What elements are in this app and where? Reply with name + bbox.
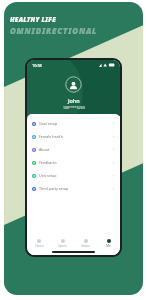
button[interactable]: Status	[74, 236, 97, 249]
staticText: Goal setup	[39, 121, 58, 126]
button[interactable]: Feedbacks	[27, 156, 120, 169]
staticText: Me	[106, 244, 111, 248]
button[interactable]: Third-party setup	[27, 182, 120, 195]
button[interactable]: Goal setup	[27, 117, 120, 130]
staticText: About	[39, 147, 50, 152]
staticText: Third-party setup	[39, 186, 69, 191]
button[interactable]: Sports	[51, 236, 74, 249]
staticText: Female health	[39, 134, 63, 139]
staticText: 188****5250	[63, 105, 85, 110]
staticText: Unit setup	[39, 173, 57, 178]
staticText: Sports	[58, 244, 67, 248]
button[interactable]: Unit setup	[27, 169, 120, 182]
staticText: OMNIDIRECTIONAL	[10, 26, 97, 37]
button[interactable]: Me	[97, 236, 120, 249]
staticText: 10:58	[32, 63, 42, 68]
button[interactable]: Female health	[27, 130, 120, 143]
button[interactable]: Home	[27, 236, 51, 249]
staticText: Feedbacks	[39, 160, 57, 165]
button[interactable]: About	[27, 143, 120, 156]
staticText: John	[68, 97, 80, 104]
staticText: Home	[35, 244, 44, 248]
staticText: Status	[81, 244, 90, 248]
staticText: HEALTHY LIFE	[10, 15, 57, 24]
